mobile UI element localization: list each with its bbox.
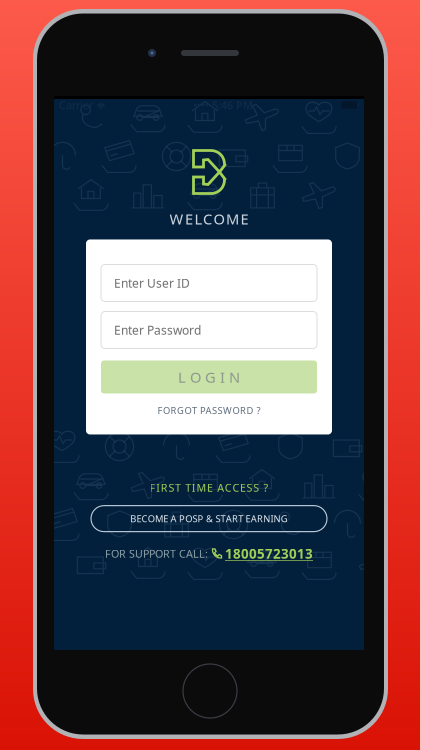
staticText: Carrier [59,98,93,112]
staticText: WELCOME [169,209,248,228]
staticText: FOR SUPPORT CALL: [105,546,208,561]
button[interactable]: FORGOT PASSWORD ? [101,402,317,418]
button[interactable]: 18005723013 [211,545,313,562]
staticText: FIRST TIME ACCESS ? [150,480,268,495]
button[interactable]: L O G I N [101,360,317,393]
staticText: BECOME A POSP & START EARNING [130,512,288,525]
button[interactable]: Enter User ID [101,264,317,301]
button[interactable]: Enter Password [101,311,317,348]
button[interactable]: BECOME A POSP & START EARNING [91,506,327,532]
staticText: Enter Password [114,322,201,338]
staticText: 18005723013 [225,545,313,562]
staticText: 5:46 PM [212,98,253,112]
staticText: L O G I N [178,367,240,387]
staticText: FORGOT PASSWORD ? [157,404,260,417]
staticText: Enter User ID [114,275,190,291]
